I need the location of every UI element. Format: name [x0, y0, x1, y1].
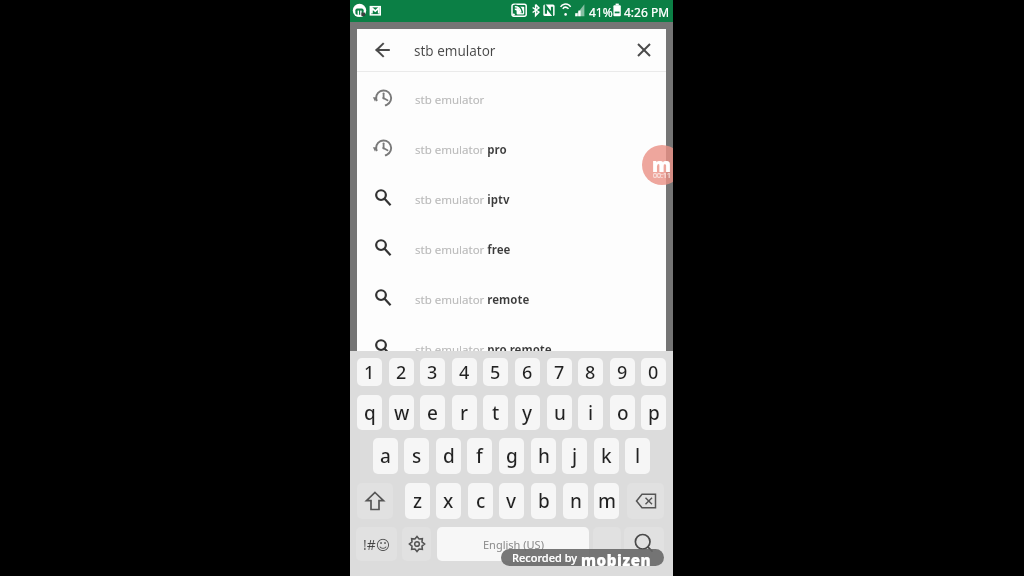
button[interactable]: Search query [405, 29, 623, 72]
button[interactable]: c [468, 483, 493, 519]
button[interactable]: z [405, 483, 430, 519]
staticText: x [443, 488, 454, 514]
staticText: f [476, 443, 483, 469]
button[interactable]: j [562, 438, 587, 474]
button[interactable]: x [436, 483, 461, 519]
staticText: q [364, 400, 376, 426]
button[interactable]: 1 [357, 358, 382, 386]
staticText: 5 [490, 360, 501, 385]
staticText: n [570, 488, 582, 514]
staticText: !#☺ [363, 535, 391, 554]
staticText: 6 [522, 360, 533, 385]
staticText: o [617, 400, 629, 426]
button[interactable]: stb emulator iptv [357, 175, 666, 225]
button[interactable]: w [389, 395, 414, 430]
button[interactable]: 0 [641, 358, 666, 386]
staticText: Recorded by [512, 550, 578, 565]
button[interactable]: Back [363, 30, 403, 70]
staticText: English (US) [483, 537, 544, 552]
staticText: t [492, 400, 500, 426]
button[interactable]: Symbols [356, 527, 397, 561]
button[interactable]: stb emulator pro [357, 125, 666, 175]
staticText: m [652, 152, 672, 178]
button[interactable]: 8 [578, 358, 603, 386]
staticText: z [413, 488, 423, 514]
staticText: stb emulator [415, 92, 485, 108]
button[interactable]: o [610, 395, 635, 430]
staticText: mobizen [581, 550, 652, 566]
staticText: 4:26 PM [624, 4, 670, 20]
staticText: y [522, 400, 533, 426]
staticText: d [443, 443, 455, 469]
button[interactable]: m [594, 483, 619, 519]
button[interactable]: stb emulator pro remote [357, 325, 666, 375]
staticText: u [554, 400, 566, 426]
button[interactable]: stb emulator free [357, 225, 666, 275]
button[interactable]: b [531, 483, 556, 519]
staticText: g [506, 443, 518, 469]
staticText: stb emulator free [415, 242, 511, 258]
button[interactable]: 6 [515, 358, 540, 386]
button[interactable]: d [436, 438, 461, 474]
staticText: i [588, 400, 594, 426]
staticText: 2 [396, 360, 407, 385]
button[interactable]: 2 [389, 358, 414, 386]
staticText: 1 [364, 360, 375, 385]
button[interactable]: g [499, 438, 524, 474]
button[interactable]: stb emulator [357, 75, 666, 125]
staticText: 8 [585, 360, 596, 385]
button[interactable]: u [547, 395, 572, 430]
staticText: e [427, 400, 438, 426]
button[interactable]: Mobizen recorder [642, 145, 673, 185]
button[interactable]: 4 [452, 358, 477, 386]
staticText: b [538, 488, 550, 514]
staticText: 9 [617, 360, 628, 385]
button[interactable]: e [420, 395, 445, 430]
staticText: s [412, 443, 422, 469]
staticText: j [572, 443, 578, 469]
staticText: 7 [554, 360, 565, 385]
button[interactable]: Clear search [625, 31, 663, 69]
button[interactable]: l [625, 438, 650, 474]
button[interactable]: a [373, 438, 398, 474]
button[interactable]: r [452, 395, 477, 430]
staticText: p [648, 400, 660, 426]
staticText: c [476, 488, 486, 514]
staticText: stb emulator pro [415, 142, 507, 158]
button[interactable]: i [578, 395, 603, 430]
button[interactable]: t [483, 395, 508, 430]
staticText: stb emulator remote [415, 292, 530, 308]
button[interactable]: 5 [483, 358, 508, 386]
button[interactable]: Backspace [627, 483, 664, 519]
staticText: w [394, 400, 410, 426]
button[interactable]: 9 [610, 358, 635, 386]
button[interactable]: n [563, 483, 588, 519]
button[interactable]: 3 [420, 358, 445, 386]
button[interactable]: Settings [402, 527, 431, 561]
button[interactable]: 7 [547, 358, 572, 386]
button[interactable]: English (US) [437, 527, 589, 561]
button[interactable]: f [467, 438, 492, 474]
button[interactable]: stb emulator remote [357, 275, 666, 325]
staticText: stb emulator [414, 42, 496, 60]
button[interactable]: q [357, 395, 382, 430]
button[interactable]: h [531, 438, 556, 474]
staticText: stb emulator iptv [415, 192, 510, 208]
button[interactable]: y [515, 395, 540, 430]
staticText: v [506, 488, 517, 514]
staticText: k [601, 443, 612, 469]
button[interactable]: s [404, 438, 429, 474]
staticText: 4 [459, 360, 470, 385]
staticText: m [598, 488, 616, 514]
button[interactable]: p [641, 395, 666, 430]
button[interactable] [593, 527, 621, 561]
button[interactable]: Shift [357, 483, 393, 519]
staticText: stb emulator pro remote [415, 342, 552, 358]
staticText: h [538, 443, 550, 469]
button[interactable]: Search [624, 527, 664, 561]
staticText: 0 [648, 360, 659, 385]
button[interactable]: k [594, 438, 619, 474]
staticText: a [380, 443, 391, 469]
button[interactable]: v [499, 483, 524, 519]
staticText: l [635, 443, 641, 469]
